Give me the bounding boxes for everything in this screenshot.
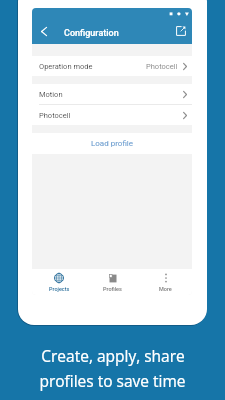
button[interactable]: Open in new xyxy=(172,22,189,39)
staticText: Create, apply, share xyxy=(41,345,185,366)
button[interactable]: Projects xyxy=(32,269,86,295)
button[interactable]: More xyxy=(139,269,192,295)
staticText: More xyxy=(159,286,172,292)
staticText: Operation mode xyxy=(39,62,93,71)
button[interactable]: Profiles xyxy=(86,269,139,295)
button[interactable]: Photocell xyxy=(32,105,192,125)
staticText: Profiles xyxy=(103,286,122,292)
button[interactable]: Load profile xyxy=(32,133,192,154)
staticText: Motion xyxy=(39,90,63,99)
button[interactable]: Operation mode xyxy=(32,56,192,76)
staticText: Configuration xyxy=(64,28,119,39)
staticText: Load profile xyxy=(91,139,134,148)
staticText: Photocell xyxy=(146,62,178,71)
staticText: profiles to save time xyxy=(39,370,186,391)
staticText: Projects xyxy=(49,286,70,292)
button[interactable]: Motion xyxy=(32,84,192,104)
staticText: Photocell xyxy=(39,111,71,120)
button[interactable]: Back xyxy=(35,23,52,40)
